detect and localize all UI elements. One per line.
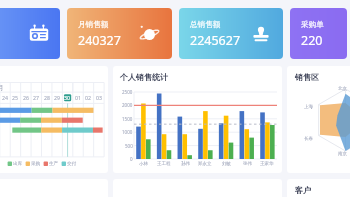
staticText: 生产 bbox=[49, 161, 59, 167]
staticText: 01 bbox=[75, 94, 81, 101]
staticText: 采购 bbox=[31, 161, 41, 167]
staticText: 张伟 bbox=[243, 161, 252, 167]
staticText: 2000 bbox=[122, 102, 133, 108]
staticText: 27 bbox=[33, 94, 39, 101]
staticText: 王家华 bbox=[260, 161, 274, 167]
staticText: 2500 bbox=[122, 89, 133, 95]
staticText: 29 bbox=[54, 94, 60, 101]
staticText: 240327 bbox=[78, 32, 121, 49]
staticText: 2245627 bbox=[190, 32, 241, 49]
staticText: 24 bbox=[2, 94, 8, 101]
staticText: 0 bbox=[130, 156, 133, 162]
other: 月销售额 bbox=[139, 23, 160, 44]
staticText: 出库 bbox=[13, 161, 23, 167]
staticText: 上海 bbox=[304, 104, 313, 110]
staticText: 刘敏 bbox=[222, 161, 231, 167]
staticText: 9月 bbox=[0, 84, 4, 92]
staticText: 客户 bbox=[295, 185, 311, 195]
button[interactable]: 月销售额 bbox=[67, 8, 172, 59]
staticText: 交付 bbox=[67, 161, 77, 167]
staticText: 02 bbox=[85, 94, 91, 101]
staticText: 28 bbox=[44, 94, 50, 101]
staticText: 孙伟 bbox=[181, 161, 190, 167]
staticText: 月销售额 bbox=[78, 20, 109, 30]
button[interactable]: 销售统计 bbox=[0, 8, 60, 59]
staticText: 南京 bbox=[338, 151, 347, 157]
staticText: 个人销售统计 bbox=[120, 72, 168, 82]
staticText: 王工程 bbox=[157, 161, 171, 167]
staticText: 长春 bbox=[304, 136, 313, 142]
staticText: 03 bbox=[96, 94, 102, 101]
button[interactable]: 总销售额 bbox=[179, 8, 283, 59]
staticText: 30 bbox=[64, 94, 70, 101]
button[interactable]: 采购单 bbox=[290, 8, 347, 59]
staticText: 25 bbox=[12, 94, 18, 101]
staticText: 北京 bbox=[338, 86, 347, 92]
staticText: 总销售额 bbox=[190, 20, 221, 30]
staticText: 郑永立 bbox=[198, 161, 212, 167]
other: 销售统计 bbox=[29, 24, 49, 44]
staticText: 1500 bbox=[122, 116, 133, 122]
staticText: 220 bbox=[301, 32, 323, 49]
staticText: 销售区 bbox=[295, 72, 319, 82]
staticText: 小林 bbox=[139, 161, 148, 167]
staticText: 500 bbox=[125, 143, 133, 149]
staticText: 26 bbox=[23, 94, 29, 101]
staticText: 采购单 bbox=[301, 20, 324, 30]
staticText: 1000 bbox=[122, 129, 133, 135]
other: 总销售额 bbox=[251, 24, 271, 44]
